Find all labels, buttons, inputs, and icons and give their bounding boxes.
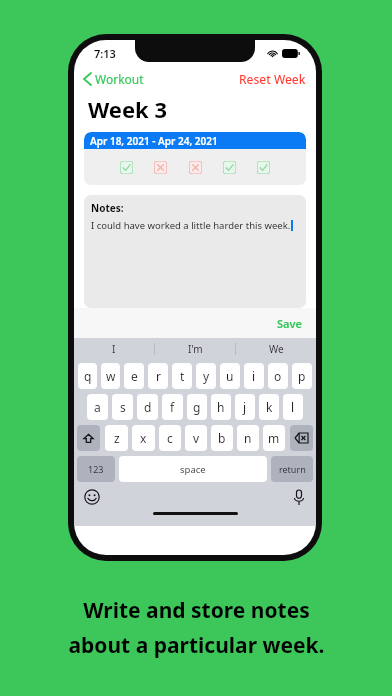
button[interactable]: v	[185, 425, 207, 451]
button[interactable]: I'm	[155, 342, 235, 356]
button[interactable]: s	[112, 394, 133, 420]
staticText: Week 3	[88, 94, 168, 124]
staticText: Workout	[95, 71, 144, 87]
button[interactable]: Emoji	[84, 489, 100, 505]
staticText: I	[112, 342, 116, 356]
staticText: s	[120, 399, 126, 415]
button[interactable]: Completed	[120, 161, 133, 174]
button[interactable]: u	[220, 363, 240, 389]
staticText: 123	[88, 463, 104, 475]
button[interactable]: Missed	[189, 161, 202, 174]
button[interactable]: w	[101, 363, 120, 389]
button[interactable]: i	[244, 363, 264, 389]
staticText: q	[84, 368, 92, 384]
button[interactable]: d	[137, 394, 158, 420]
button[interactable]: Completed	[223, 161, 236, 174]
staticText: Reset Week	[239, 71, 306, 87]
button[interactable]: n	[237, 425, 259, 451]
button[interactable]: y	[196, 363, 216, 389]
button[interactable]: p	[292, 363, 312, 389]
staticText: x	[140, 430, 147, 446]
button[interactable]: Reset Week	[239, 71, 306, 87]
button[interactable]: l	[283, 394, 303, 420]
staticText: I'm	[188, 342, 203, 356]
button[interactable]: z	[105, 425, 128, 451]
button[interactable]: g	[187, 394, 207, 420]
staticText: Save	[277, 316, 302, 331]
button[interactable]: r	[148, 363, 168, 389]
staticText: o	[274, 368, 282, 384]
staticText: I could have worked a little harder this…	[91, 219, 291, 232]
button[interactable]: a	[87, 394, 108, 420]
button[interactable]: return	[271, 456, 313, 482]
staticText: Notes:	[91, 201, 124, 215]
staticText: l	[291, 399, 295, 415]
button[interactable]: Dictation	[294, 490, 304, 505]
staticText: d	[144, 399, 152, 415]
staticText: j	[243, 399, 247, 415]
button[interactable]: Backspace	[290, 425, 313, 451]
staticText: Apr 18, 2021 - Apr 24, 2021	[90, 134, 218, 148]
button[interactable]: q	[78, 363, 97, 389]
staticText: v	[193, 430, 200, 446]
staticText: i	[252, 368, 256, 384]
staticText: t	[180, 368, 185, 384]
staticText: Write and store notes	[83, 596, 310, 625]
button[interactable]: k	[259, 394, 279, 420]
staticText: We	[269, 342, 284, 356]
button[interactable]: x	[132, 425, 155, 451]
staticText: 7:13	[94, 46, 116, 61]
button[interactable]: t	[172, 363, 192, 389]
staticText: b	[218, 430, 226, 446]
staticText: about a particular week.	[68, 631, 325, 660]
button[interactable]: b	[211, 425, 233, 451]
button[interactable]: Shift	[77, 425, 100, 451]
button[interactable]: f	[162, 394, 183, 420]
button[interactable]: e	[124, 363, 144, 389]
staticText: y	[203, 368, 210, 384]
staticText: f	[170, 399, 175, 415]
staticText: space	[180, 463, 206, 476]
button[interactable]: I	[74, 342, 154, 356]
staticText: h	[217, 399, 225, 415]
staticText: return	[279, 463, 306, 475]
button[interactable]: Save	[277, 316, 302, 331]
staticText: a	[94, 399, 101, 415]
staticText: c	[167, 430, 173, 446]
staticText: p	[298, 368, 306, 384]
button[interactable]: Missed	[154, 161, 167, 174]
button[interactable]: j	[235, 394, 255, 420]
button[interactable]: m	[263, 425, 285, 451]
button[interactable]: We	[236, 342, 316, 356]
staticText: z	[114, 430, 120, 446]
button[interactable]: h	[211, 394, 231, 420]
button[interactable]: o	[268, 363, 288, 389]
button[interactable]: 123	[77, 456, 115, 482]
button[interactable]: c	[159, 425, 181, 451]
button[interactable]: Completed	[257, 161, 270, 174]
staticText: n	[244, 430, 252, 446]
staticText: e	[131, 368, 138, 384]
staticText: u	[226, 368, 234, 384]
staticText: w	[106, 368, 116, 384]
staticText: r	[156, 368, 161, 384]
staticText: g	[193, 399, 201, 415]
staticText: m	[268, 430, 280, 446]
button[interactable]: Workout	[84, 71, 144, 87]
staticText: k	[266, 399, 273, 415]
button[interactable]: space	[119, 456, 267, 482]
